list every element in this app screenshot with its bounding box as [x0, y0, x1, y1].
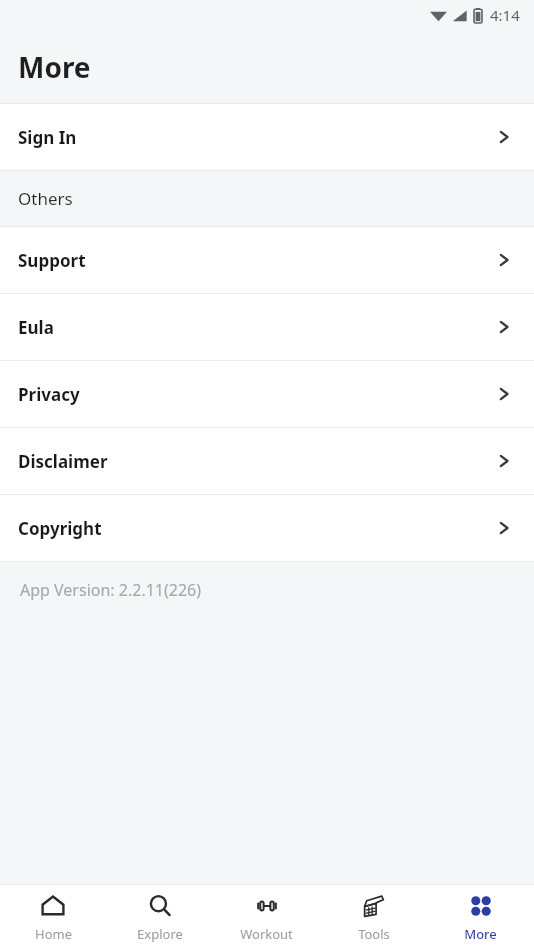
button[interactable]: Privacy [0, 361, 534, 427]
staticText: Workout [240, 925, 293, 943]
staticText: Tools [358, 925, 390, 943]
staticText: Privacy [18, 383, 80, 406]
staticText: Others [18, 187, 73, 210]
staticText: Explore [137, 925, 183, 943]
staticText: 4:14 [490, 5, 520, 25]
button[interactable]: Explore [106, 885, 213, 950]
button[interactable]: Sign In [0, 104, 534, 170]
staticText: More [18, 48, 91, 86]
button[interactable]: Home [0, 885, 106, 950]
button[interactable]: Disclaimer [0, 428, 534, 494]
staticText: Support [18, 249, 86, 272]
button[interactable]: Eula [0, 294, 534, 360]
staticText: Home [35, 925, 72, 943]
button[interactable]: Support [0, 227, 534, 293]
staticText: Disclaimer [18, 450, 108, 473]
button[interactable]: Workout [213, 885, 320, 950]
staticText: More [464, 925, 497, 943]
button[interactable]: Tools [320, 885, 427, 950]
staticText: Copyright [18, 517, 102, 540]
staticText: App Version: 2.2.11(226) [20, 579, 202, 601]
staticText: Sign In [18, 126, 77, 149]
button[interactable]: More [427, 885, 534, 950]
staticText: Eula [18, 316, 54, 339]
button[interactable]: Copyright [0, 495, 534, 561]
